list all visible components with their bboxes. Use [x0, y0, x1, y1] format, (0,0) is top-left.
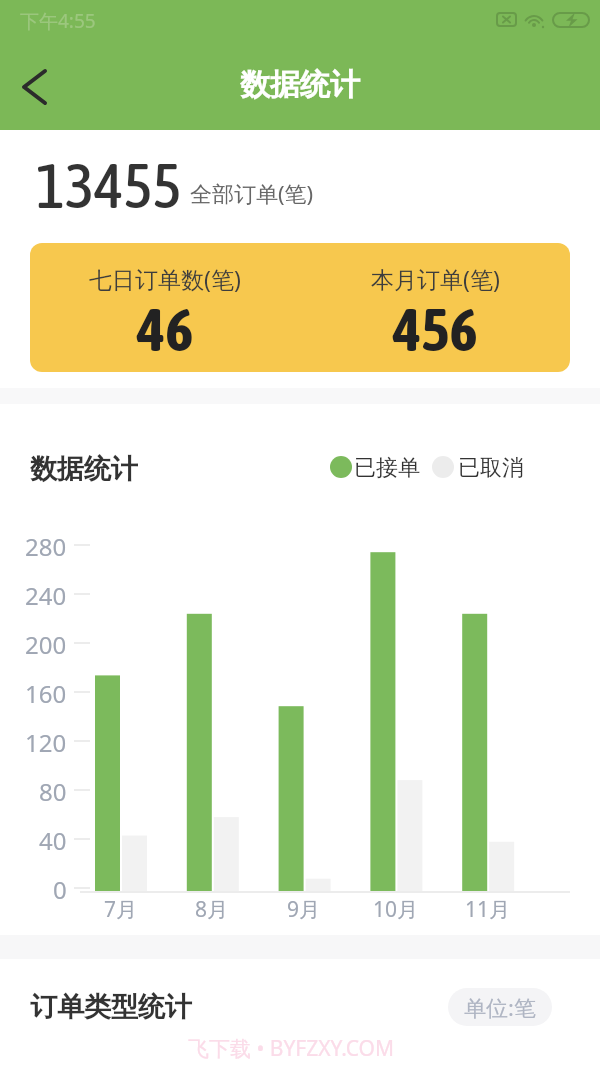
staticText: 下午4:55 — [20, 8, 96, 34]
staticText: 数据统计 — [240, 66, 360, 104]
staticText: 单位:笔 — [464, 992, 536, 1022]
staticText: 456 — [393, 295, 478, 364]
staticText: 160 — [25, 677, 67, 707]
staticText: 全部订单(笔) — [190, 178, 314, 208]
staticText: 已取消 — [458, 454, 524, 482]
staticText: 8月 — [195, 895, 229, 924]
staticText: 七日订单数(笔) — [89, 263, 241, 294]
staticText: 13455 — [36, 150, 182, 220]
staticText: 飞下载 • BYFZXY.COM — [188, 1034, 395, 1063]
staticText: 9月 — [287, 895, 321, 924]
staticText: 11月 — [465, 895, 511, 924]
button[interactable] — [8, 62, 56, 110]
staticText: 200 — [25, 628, 67, 658]
staticText: 280 — [25, 530, 67, 560]
staticText: 本月订单(笔) — [371, 263, 500, 294]
staticText: 已接单 — [354, 454, 420, 482]
button[interactable] — [30, 243, 570, 372]
staticText: 10月 — [373, 895, 419, 924]
staticText: 7月 — [104, 895, 138, 924]
staticText: 46 — [137, 295, 194, 364]
staticText: 240 — [25, 579, 67, 609]
staticText: 数据统计 — [30, 452, 138, 484]
staticText: 订单类型统计 — [30, 990, 192, 1024]
staticText: 0 — [53, 873, 67, 903]
staticText: 40 — [39, 824, 67, 854]
button[interactable]: 单位:笔 — [448, 988, 552, 1026]
staticText: 80 — [39, 775, 67, 805]
staticText: 120 — [25, 726, 67, 756]
